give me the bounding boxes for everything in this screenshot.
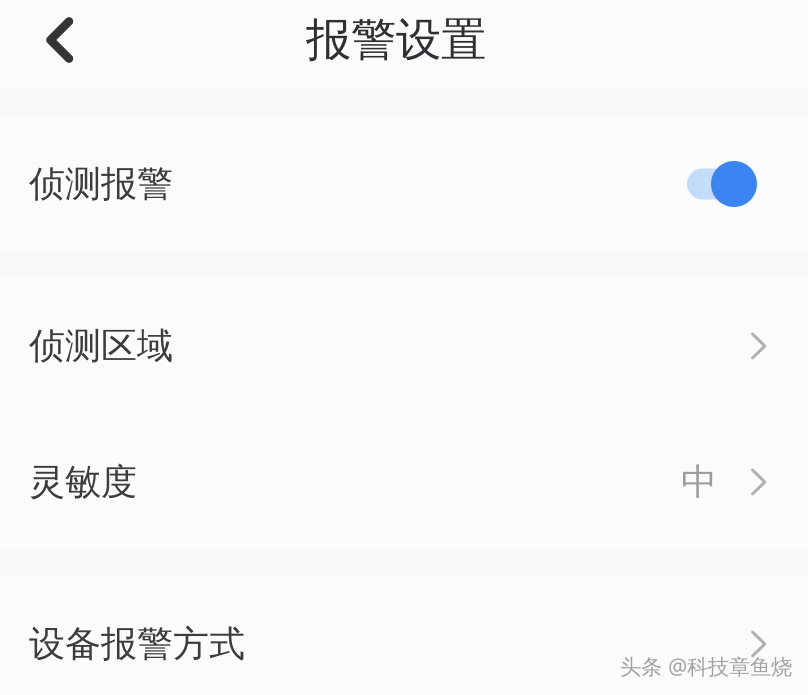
button[interactable]: 侦测报警 <box>0 116 808 252</box>
staticText: 侦测报警 <box>29 162 173 206</box>
staticText: 设备报警方式 <box>29 622 245 666</box>
staticText: 侦测区域 <box>29 324 173 368</box>
staticText: 报警设置 <box>306 12 486 68</box>
button[interactable]: 灵敏度 <box>0 414 808 550</box>
button[interactable]: 设备报警方式 <box>0 576 808 695</box>
button[interactable]: Back <box>0 0 122 88</box>
staticText: 头条 @科技章鱼烧 <box>620 652 792 680</box>
button[interactable]: 侦测区域 <box>0 278 808 414</box>
staticText: 中 <box>681 460 717 504</box>
staticText: 灵敏度 <box>29 460 137 504</box>
